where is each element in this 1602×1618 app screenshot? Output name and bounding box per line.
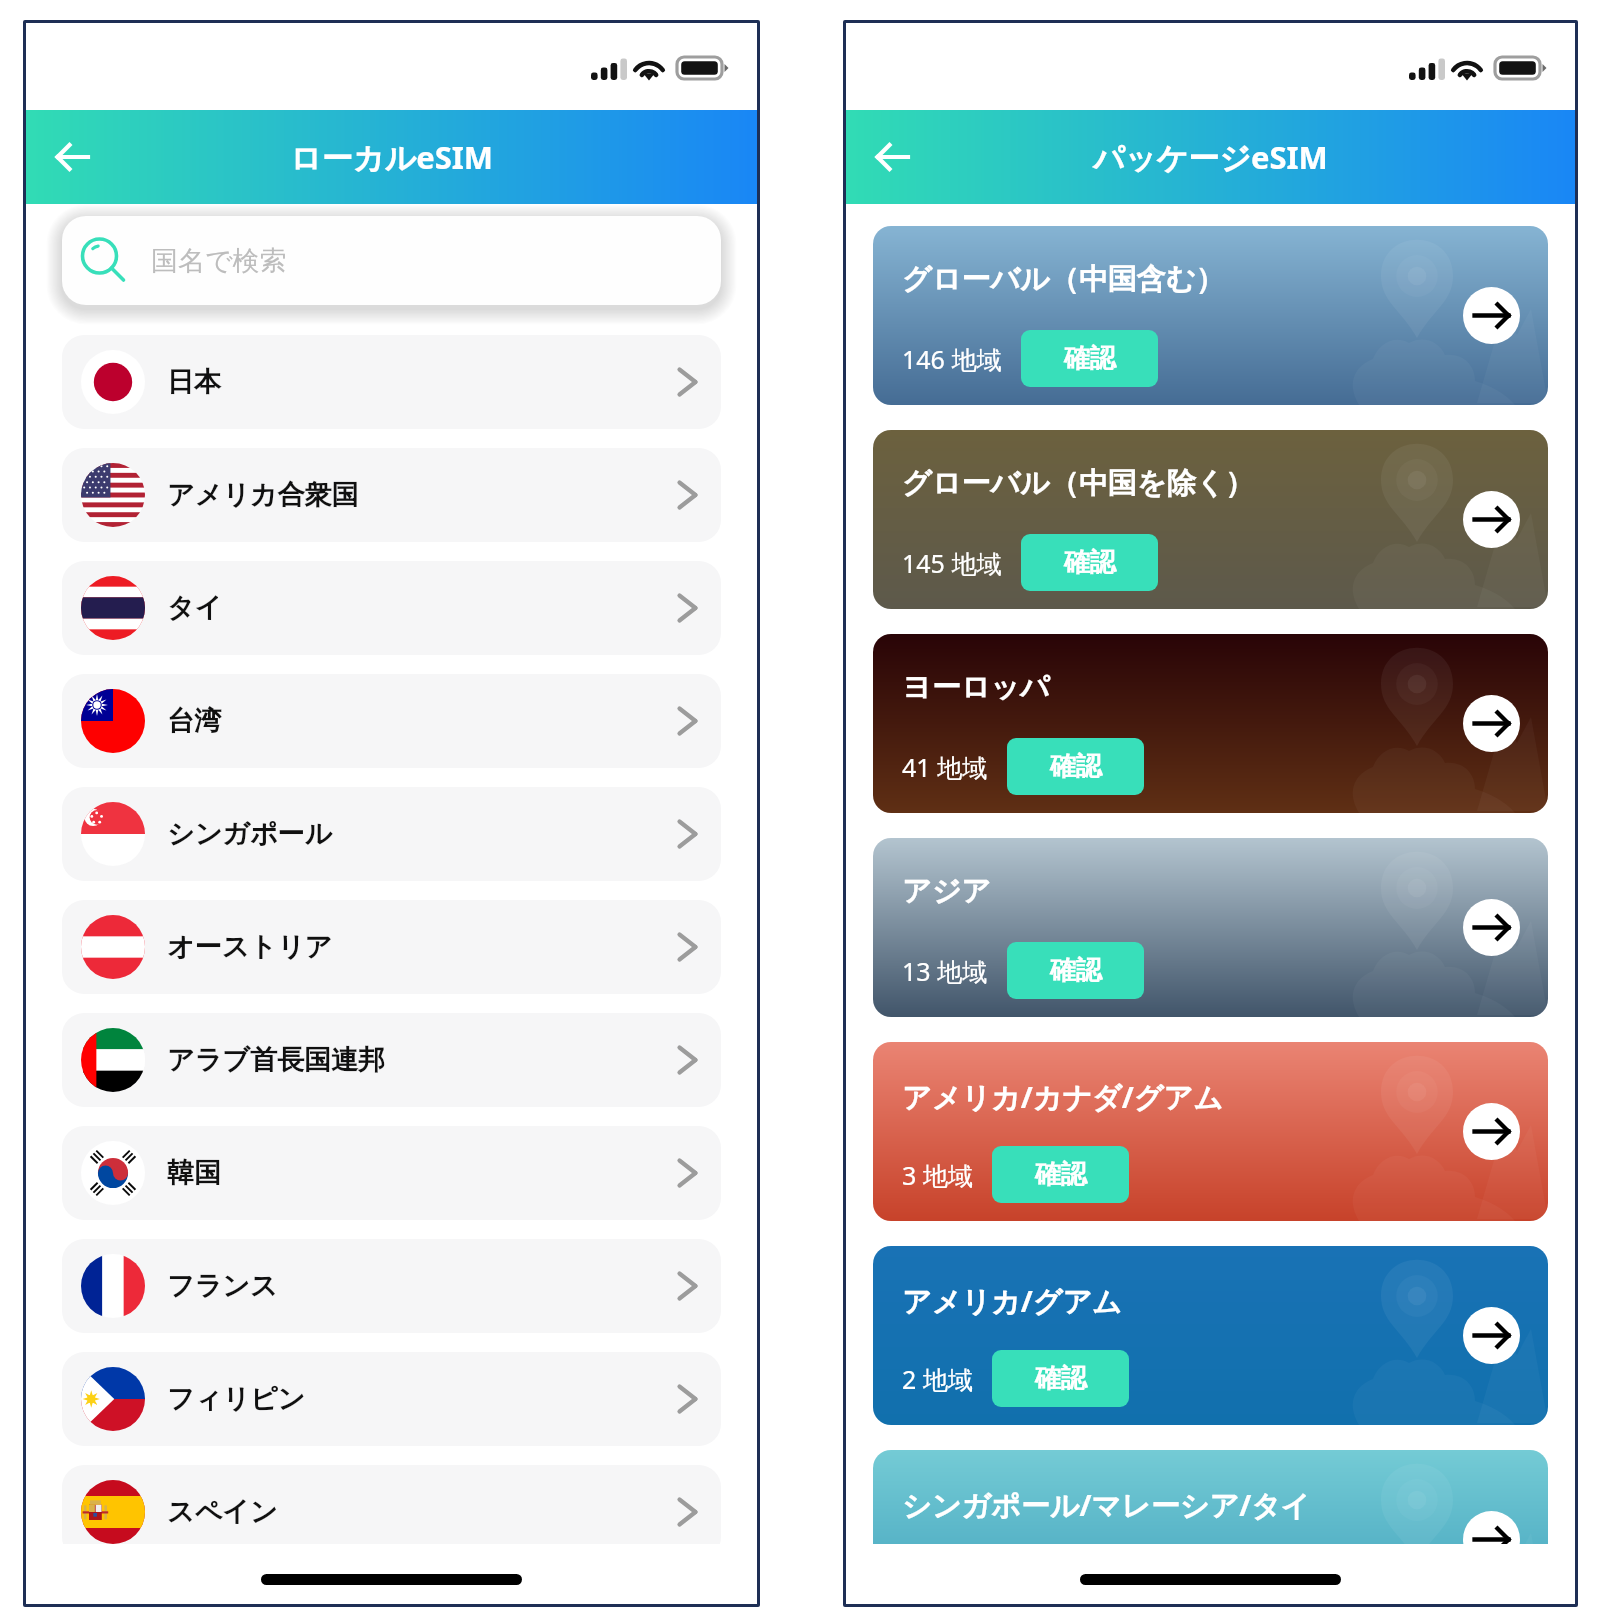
button[interactable]: 韓国 bbox=[62, 1126, 721, 1220]
staticText: シンガポール/マレーシア/タイ bbox=[902, 1485, 1311, 1525]
staticText: 確認 bbox=[1064, 342, 1116, 375]
staticText: タイ bbox=[167, 591, 223, 625]
staticText: 韓国 bbox=[167, 1156, 221, 1190]
staticText: 145 地域 bbox=[902, 546, 1002, 580]
button[interactable]: 台湾 bbox=[62, 674, 721, 768]
button[interactable]: シンガポール/マレーシア/タイ bbox=[873, 1450, 1548, 1544]
staticText: 確認 bbox=[1050, 954, 1102, 987]
staticText: 13 地域 bbox=[902, 954, 988, 988]
staticText: アメリカ/グアム bbox=[902, 1281, 1122, 1321]
staticText: 3 地域 bbox=[902, 1158, 973, 1192]
button[interactable]: グローバル（中国含む） bbox=[873, 226, 1548, 405]
button[interactable]: アメリカ/カナダ/グアム bbox=[873, 1042, 1548, 1221]
button[interactable]: シンガポール bbox=[62, 787, 721, 881]
button[interactable]: スペイン bbox=[62, 1465, 721, 1544]
staticText: グローバル（中国含む） bbox=[902, 261, 1225, 298]
button[interactable]: Back bbox=[35, 119, 111, 195]
button[interactable]: 確認 bbox=[992, 1350, 1129, 1407]
staticText: アメリカ合衆国 bbox=[167, 478, 359, 512]
staticText: 確認 bbox=[1064, 546, 1116, 579]
staticText: アジア bbox=[902, 873, 992, 910]
staticText: アメリカ/カナダ/グアム bbox=[902, 1077, 1223, 1117]
staticText: 台湾 bbox=[167, 704, 221, 738]
staticText: シンガポール bbox=[167, 817, 333, 851]
button[interactable]: 確認 bbox=[992, 1146, 1129, 1203]
button[interactable]: アメリカ合衆国 bbox=[62, 448, 721, 542]
staticText: オーストリア bbox=[167, 930, 333, 964]
button[interactable]: オーストリア bbox=[62, 900, 721, 994]
button[interactable]: ヨーロッパ bbox=[873, 634, 1548, 813]
button[interactable]: Open package bbox=[1463, 491, 1520, 548]
button[interactable]: フィリピン bbox=[62, 1352, 721, 1446]
button[interactable]: フランス bbox=[62, 1239, 721, 1333]
staticText: 国名で検索 bbox=[151, 244, 287, 278]
staticText: スペイン bbox=[167, 1495, 278, 1529]
staticText: 確認 bbox=[1035, 1362, 1087, 1395]
staticText: 146 地域 bbox=[902, 342, 1002, 376]
button[interactable]: Open package bbox=[1463, 695, 1520, 752]
staticText: アラブ首長国連邦 bbox=[167, 1043, 385, 1077]
button[interactable]: 確認 bbox=[1021, 330, 1158, 387]
button[interactable]: タイ bbox=[62, 561, 721, 655]
button[interactable]: Open package bbox=[1463, 899, 1520, 956]
staticText: 41 地域 bbox=[902, 750, 988, 784]
staticText: フィリピン bbox=[167, 1382, 306, 1416]
button[interactable]: Open package bbox=[1463, 1103, 1520, 1160]
button[interactable]: アラブ首長国連邦 bbox=[62, 1013, 721, 1107]
staticText: 日本 bbox=[167, 365, 221, 399]
button[interactable]: Open package bbox=[1463, 1307, 1520, 1364]
staticText: ローカルeSIM bbox=[290, 136, 494, 178]
staticText: ヨーロッパ bbox=[902, 669, 1050, 706]
button[interactable]: Back bbox=[855, 119, 931, 195]
staticText: 確認 bbox=[1035, 1158, 1087, 1191]
button[interactable]: アメリカ/グアム bbox=[873, 1246, 1548, 1425]
button[interactable]: アジア bbox=[873, 838, 1548, 1017]
staticText: 確認 bbox=[1050, 750, 1102, 783]
button[interactable]: 確認 bbox=[1021, 534, 1158, 591]
button[interactable]: 確認 bbox=[1007, 738, 1144, 795]
button[interactable]: Open package bbox=[1463, 1511, 1520, 1544]
button[interactable]: Open package bbox=[1463, 287, 1520, 344]
staticText: グローバル（中国を除く） bbox=[902, 465, 1255, 502]
button[interactable]: グローバル（中国を除く） bbox=[873, 430, 1548, 609]
staticText: フランス bbox=[167, 1269, 278, 1303]
button[interactable]: 確認 bbox=[1007, 942, 1144, 999]
button[interactable]: 日本 bbox=[62, 335, 721, 429]
staticText: パッケージeSIM bbox=[1093, 136, 1328, 178]
button[interactable]: 国名で検索 bbox=[62, 216, 721, 305]
staticText: 2 地域 bbox=[902, 1362, 973, 1396]
